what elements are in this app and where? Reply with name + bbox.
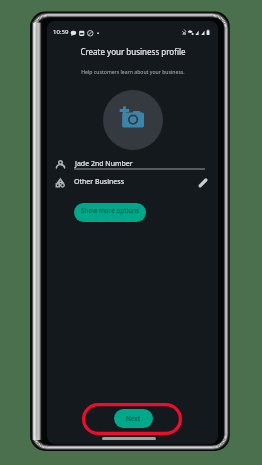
- button[interactable]: Next: [114, 409, 153, 428]
- staticText: 10:59: [53, 28, 69, 36]
- staticText: Show more options: [81, 206, 140, 215]
- staticText: Create your business profile: [80, 46, 186, 57]
- staticText: Help customers learn about your business…: [81, 68, 185, 75]
- button[interactable]: Edit business category: [196, 176, 210, 190]
- staticText: Next: [126, 414, 141, 423]
- button[interactable]: Show more options: [74, 203, 146, 222]
- button[interactable]: Other Business: [47, 176, 218, 192]
- button[interactable]: Jade 2nd Number: [47, 157, 218, 173]
- button[interactable]: Add business photo: [103, 90, 163, 150]
- staticText: Jade 2nd Number: [75, 159, 133, 169]
- staticText: Other Business: [74, 177, 124, 187]
